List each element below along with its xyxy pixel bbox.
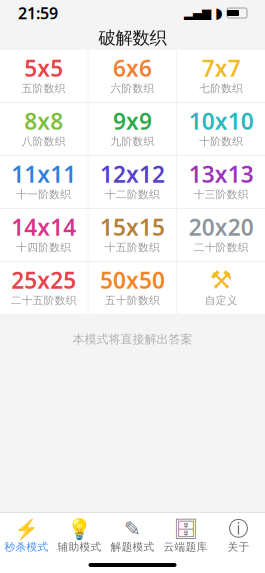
staticText: 50x50 [100,265,165,295]
button[interactable]: ✎ [106,517,159,557]
staticText: 9x9 [113,106,152,136]
button[interactable]: 9x9 [89,103,176,155]
staticText: ⚡ [14,517,39,540]
staticText: 15x15 [100,212,165,242]
staticText: 25x25 [11,265,76,295]
staticText: 6x6 [113,53,152,83]
staticText: 十五阶数织 [105,241,160,254]
staticText: 七阶数织 [199,82,243,95]
staticText: 二十五阶数织 [11,294,77,307]
staticText: 解题模式 [110,540,154,553]
button[interactable]: 12x12 [89,156,176,208]
staticText: 12x12 [100,159,165,189]
staticText: 21:59 [18,2,58,24]
button[interactable]: 🗄 [159,517,212,557]
staticText: ⚒ [210,266,233,294]
staticText: 💡 [67,517,92,540]
button[interactable]: 11x11 [0,156,88,208]
staticText: 8x8 [24,106,63,136]
button[interactable]: 25x25 [0,262,88,314]
staticText: 破解数织 [98,27,166,49]
button[interactable]: 13x13 [177,156,265,208]
button[interactable]: 5x5 [0,50,88,102]
staticText: 关于 [227,540,249,553]
button[interactable]: 20x20 [177,209,265,261]
button[interactable]: 💡 [53,517,106,557]
staticText: 六阶数织 [110,82,154,95]
button[interactable]: 8x8 [0,103,88,155]
staticText: 13x13 [189,159,254,189]
staticText: 二十阶数织 [194,241,249,254]
staticText: 14x14 [11,212,76,242]
staticText: ⓘ [228,517,248,541]
staticText: 十阶数织 [199,135,243,148]
staticText: ◗ [215,5,223,21]
staticText: 10x10 [189,106,254,136]
staticText: 11x11 [11,159,76,189]
staticText: ▂▄▆ [184,6,211,20]
staticText: 十一阶数织 [16,188,71,201]
button[interactable]: 15x15 [89,209,176,261]
staticText: 八阶数织 [22,135,66,148]
staticText: 本模式将直接解出答案 [72,332,192,347]
staticText: 自定义 [205,294,238,307]
staticText: 辅助模式 [57,540,101,553]
button[interactable]: 14x14 [0,209,88,261]
staticText: 五阶数织 [22,82,66,95]
button[interactable]: ⚒ [177,262,265,314]
button[interactable]: 50x50 [89,262,176,314]
staticText: 五十阶数织 [105,294,160,307]
staticText: 🗄 [173,517,198,540]
staticText: 5x5 [24,53,63,83]
staticText: 十四阶数织 [16,241,71,254]
button[interactable]: ⚡ [0,517,53,557]
button[interactable]: 7x7 [177,50,265,102]
staticText: 十三阶数织 [194,188,249,201]
staticText: 九阶数织 [110,135,154,148]
staticText: 7x7 [202,53,241,83]
staticText: 20x20 [189,212,254,242]
button[interactable]: 6x6 [89,50,176,102]
button[interactable]: 10x10 [177,103,265,155]
button[interactable]: ⓘ [212,517,265,557]
staticText: ✎ [124,518,141,540]
staticText: 云端题库 [163,540,207,553]
staticText: 秒杀模式 [4,540,48,553]
staticText: 十二阶数织 [105,188,160,201]
